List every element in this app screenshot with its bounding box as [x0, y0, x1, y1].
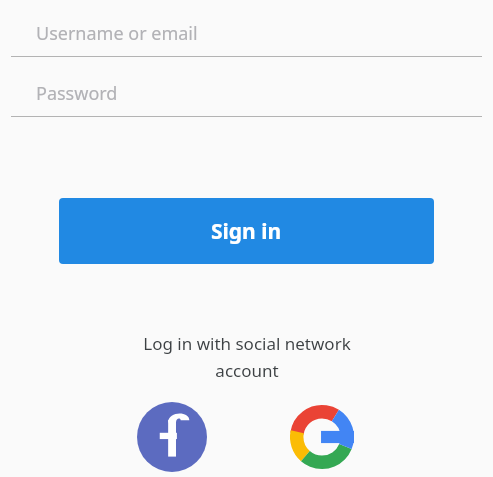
staticText: Username or email — [36, 21, 198, 46]
staticText: Password — [36, 81, 118, 106]
button[interactable]: Username or email — [11, 14, 482, 57]
button[interactable]: Sign in with Facebook — [135, 400, 209, 474]
staticText: Sign in — [211, 217, 282, 246]
button[interactable]: Sign in — [59, 198, 434, 264]
staticText: Log in with social network account — [143, 332, 351, 382]
button[interactable]: Password — [11, 74, 482, 117]
button[interactable]: Sign in with Google — [285, 400, 359, 474]
